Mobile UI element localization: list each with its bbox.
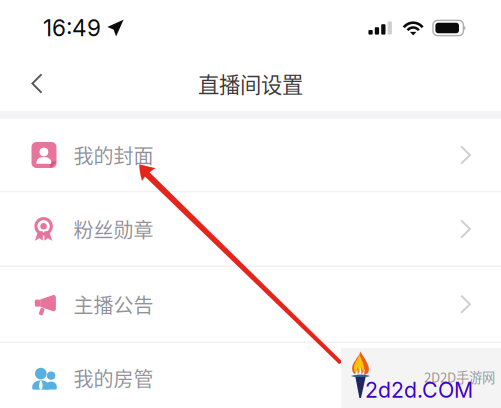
button[interactable]: 粉丝勋章 [0,192,501,265]
staticText: 2d2d.COM [365,377,473,403]
button[interactable]: 主播公告 [0,267,501,341]
button[interactable]: 我的房管 [0,343,501,408]
button[interactable]: Back [16,61,58,105]
staticText: 我的封面 [73,140,153,169]
staticText: 我的房管 [73,363,153,392]
staticText: 16:49 [43,14,101,42]
staticText: 2D2D手游网 [424,367,495,386]
staticText: 粉丝勋章 [73,214,153,243]
staticText: 主播公告 [73,290,153,319]
staticText: 直播间设置 [198,68,303,99]
button[interactable]: 我的封面 [0,119,501,191]
